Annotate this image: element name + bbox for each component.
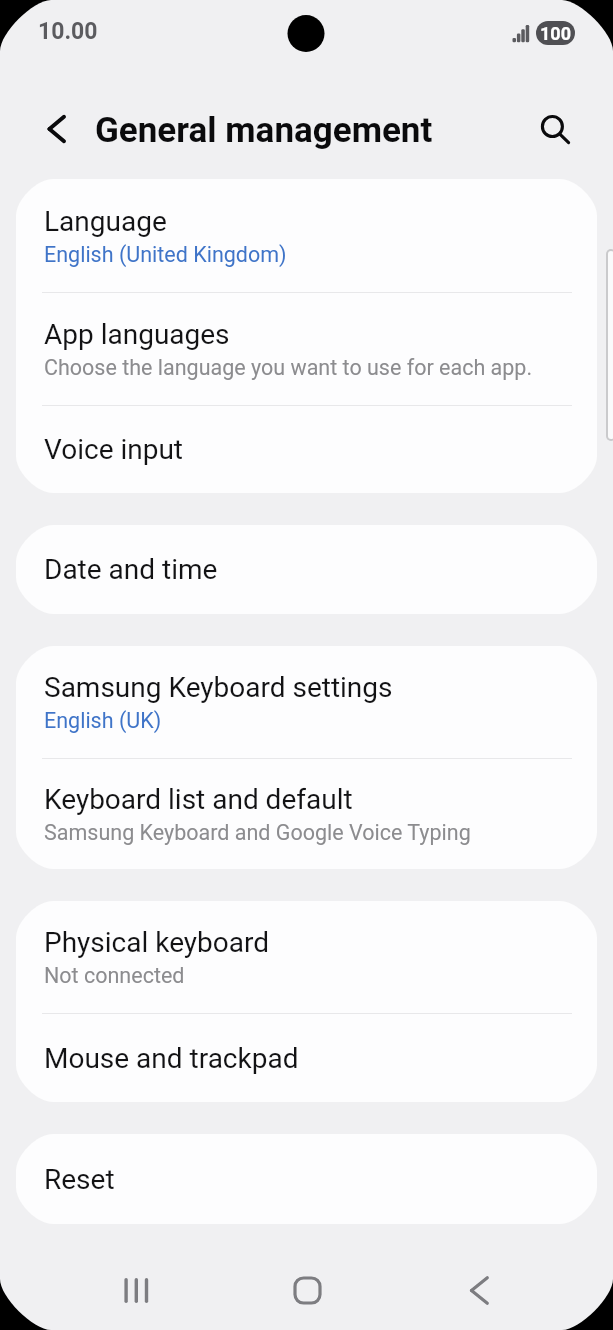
staticText: Choose the language you want to use for … xyxy=(44,355,533,380)
button[interactable]: Back xyxy=(422,1248,536,1330)
staticText: Language xyxy=(44,205,167,238)
staticText: Samsung Keyboard and Google Voice Typing xyxy=(44,820,471,845)
button[interactable]: Voice input xyxy=(16,406,597,493)
staticText: Physical keyboard xyxy=(44,926,270,959)
staticText: Mouse and trackpad xyxy=(44,1042,299,1075)
button[interactable]: Navigate up xyxy=(26,104,78,156)
button[interactable]: Date and time xyxy=(16,525,597,614)
staticText: Samsung Keyboard settings xyxy=(44,671,393,704)
staticText: 100 xyxy=(540,23,571,44)
button[interactable]: Keyboard list and default xyxy=(16,759,597,869)
button[interactable]: Physical keyboard xyxy=(16,901,597,1013)
staticText: English (UK) xyxy=(44,708,162,733)
button[interactable]: App languages xyxy=(16,293,597,405)
staticText: App languages xyxy=(44,318,230,351)
staticText: Voice input xyxy=(44,433,184,466)
button[interactable]: Recent apps xyxy=(79,1248,193,1330)
staticText: Not connected xyxy=(44,963,185,988)
button[interactable]: Home xyxy=(250,1248,364,1330)
staticText: Date and time xyxy=(44,553,218,586)
staticText: English (United Kingdom) xyxy=(44,242,287,267)
button[interactable]: Samsung Keyboard settings xyxy=(16,646,597,758)
staticText: 10.00 xyxy=(38,18,98,45)
button[interactable]: Language xyxy=(16,179,597,292)
staticText: General management xyxy=(95,110,433,151)
staticText: Keyboard list and default xyxy=(44,783,353,816)
button[interactable]: Search xyxy=(526,104,578,156)
staticText: Reset xyxy=(44,1163,115,1196)
button[interactable]: Mouse and trackpad xyxy=(16,1014,597,1102)
button[interactable]: Reset xyxy=(16,1134,597,1224)
